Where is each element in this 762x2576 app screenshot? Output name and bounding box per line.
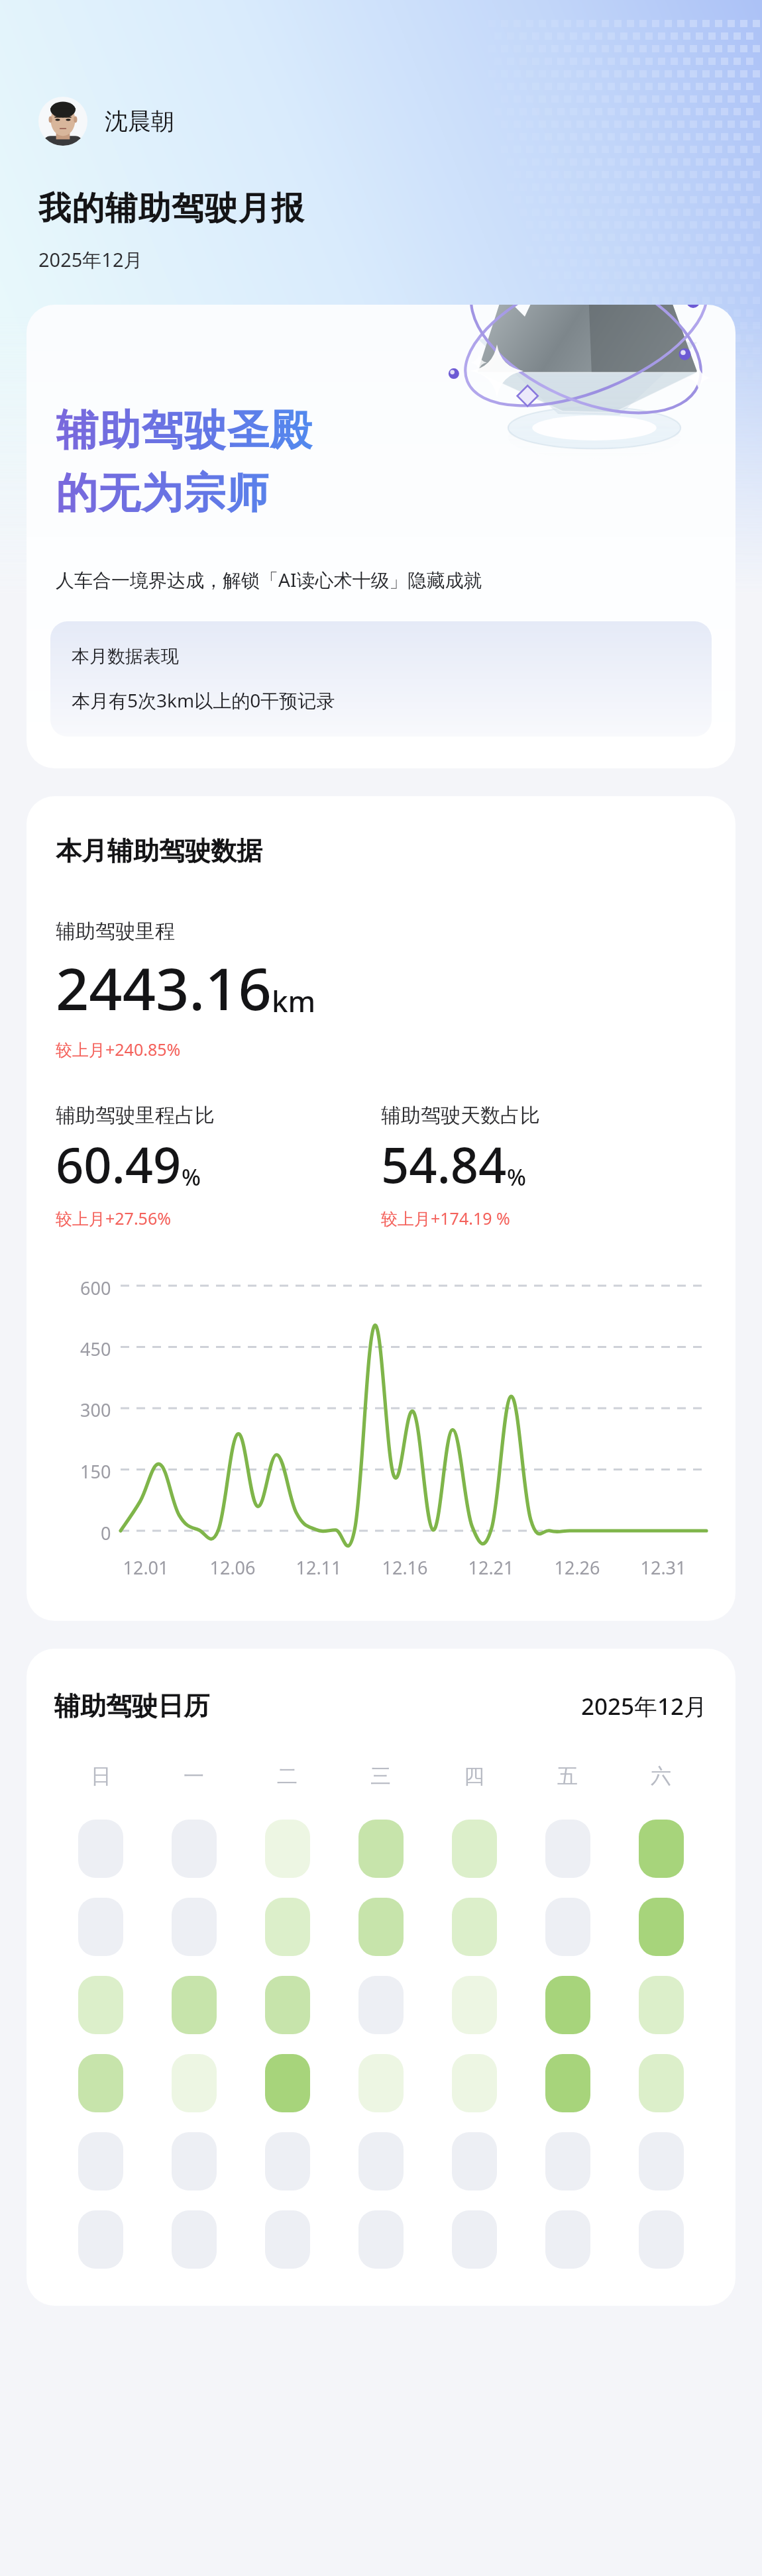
button[interactable] xyxy=(265,2210,310,2269)
button[interactable]: 辅助驾驶圣殿 xyxy=(27,305,735,768)
button[interactable] xyxy=(172,2132,217,2190)
staticText: 0 xyxy=(101,1521,111,1541)
button[interactable]: 辅助驾驶天数占比 xyxy=(381,1103,706,1229)
staticText: 六 xyxy=(651,1763,671,1789)
staticText: 三 xyxy=(370,1763,391,1789)
staticText: 一 xyxy=(184,1763,204,1789)
staticText: 2025年12月 xyxy=(581,1690,708,1722)
button[interactable] xyxy=(452,1898,497,1956)
button[interactable] xyxy=(265,1898,310,1956)
staticText: 辅助驾驶里程 xyxy=(56,919,175,944)
staticText: 我的辅助驾驶月报 xyxy=(38,188,305,229)
button[interactable] xyxy=(172,1898,217,1956)
button[interactable] xyxy=(265,1820,310,1878)
button[interactable] xyxy=(639,2054,684,2112)
button[interactable] xyxy=(452,2210,497,2269)
staticText: 日 xyxy=(91,1763,111,1789)
button[interactable] xyxy=(545,2132,590,2190)
staticText: 300 xyxy=(80,1398,111,1417)
button[interactable] xyxy=(452,1820,497,1878)
button[interactable]: 辅助驾驶里程占比 xyxy=(56,1103,381,1229)
button[interactable]: 辅助驾驶日历 xyxy=(27,1649,735,2306)
staticText: 辅助驾驶天数占比 xyxy=(381,1103,540,1128)
staticText: 本月有5次3km以上的0干预记录 xyxy=(72,688,335,713)
button[interactable] xyxy=(358,1898,404,1956)
staticText: 12.01 xyxy=(123,1555,169,1580)
button[interactable] xyxy=(78,1898,123,1956)
button[interactable] xyxy=(639,1898,684,1956)
staticText: 沈晨朝 xyxy=(105,107,174,136)
button[interactable] xyxy=(545,1898,590,1956)
button[interactable] xyxy=(545,1976,590,2034)
button[interactable] xyxy=(78,2210,123,2269)
staticText: 2025年12月 xyxy=(38,246,143,273)
button[interactable]: 辅助驾驶里程趋势图 xyxy=(56,1276,706,1580)
button[interactable] xyxy=(545,1820,590,1878)
button[interactable] xyxy=(639,2132,684,2190)
staticText: 较上月+27.56% xyxy=(56,1207,171,1229)
button[interactable] xyxy=(78,2054,123,2112)
staticText: 辅助驾驶里程占比 xyxy=(56,1103,215,1128)
button[interactable] xyxy=(545,2054,590,2112)
button[interactable] xyxy=(452,1976,497,2034)
staticText: 12.11 xyxy=(296,1555,342,1580)
staticText: 12.16 xyxy=(382,1555,428,1580)
staticText: 2443.16 xyxy=(56,948,272,1027)
button[interactable] xyxy=(358,2054,404,2112)
button[interactable] xyxy=(265,2132,310,2190)
button[interactable] xyxy=(358,2132,404,2190)
staticText: 辅助驾驶日历 xyxy=(54,1690,209,1722)
staticText: % xyxy=(182,1162,201,1192)
staticText: 二 xyxy=(277,1763,298,1789)
button[interactable] xyxy=(639,2210,684,2269)
staticText: 本月辅助驾驶数据 xyxy=(56,835,262,867)
button[interactable]: 本月数据表现 xyxy=(50,621,712,737)
button[interactable] xyxy=(265,2054,310,2112)
staticText: 54.84 xyxy=(381,1131,507,1198)
button[interactable]: 本月辅助驾驶数据 xyxy=(27,796,735,1621)
button[interactable] xyxy=(172,1820,217,1878)
button[interactable] xyxy=(358,1976,404,2034)
staticText: 12.21 xyxy=(468,1555,514,1580)
staticText: 较上月+240.85% xyxy=(56,1038,181,1060)
staticText: 12.31 xyxy=(640,1555,686,1580)
staticText: 60.49 xyxy=(56,1131,182,1198)
staticText: 450 xyxy=(80,1337,111,1357)
button[interactable]: 沈晨朝 xyxy=(36,94,185,148)
button[interactable] xyxy=(358,1820,404,1878)
staticText: 较上月+174.19 % xyxy=(381,1207,510,1229)
staticText: 五 xyxy=(557,1763,578,1789)
staticText: km xyxy=(272,981,316,1021)
button[interactable] xyxy=(172,1976,217,2034)
button[interactable] xyxy=(172,2054,217,2112)
button[interactable] xyxy=(639,1820,684,1878)
staticText: 四 xyxy=(464,1763,484,1789)
button[interactable] xyxy=(172,2210,217,2269)
button[interactable] xyxy=(358,2210,404,2269)
button[interactable] xyxy=(265,1976,310,2034)
staticText: 本月数据表现 xyxy=(72,645,179,668)
button[interactable] xyxy=(78,1820,123,1878)
staticText: % xyxy=(507,1162,526,1192)
staticText: 人车合一境界达成，解锁「AI读心术十级」隐藏成就 xyxy=(56,567,482,592)
button[interactable] xyxy=(639,1976,684,2034)
staticText: 600 xyxy=(80,1276,111,1296)
button[interactable] xyxy=(545,2210,590,2269)
staticText: 辅助驾驶圣殿 xyxy=(56,404,312,456)
staticText: 的无为宗师 xyxy=(56,467,270,519)
staticText: 12.06 xyxy=(209,1555,256,1580)
button[interactable] xyxy=(78,2132,123,2190)
button[interactable] xyxy=(452,2054,497,2112)
staticText: 150 xyxy=(80,1459,111,1479)
button[interactable] xyxy=(452,2132,497,2190)
button[interactable] xyxy=(78,1976,123,2034)
staticText: 12.26 xyxy=(554,1555,600,1580)
